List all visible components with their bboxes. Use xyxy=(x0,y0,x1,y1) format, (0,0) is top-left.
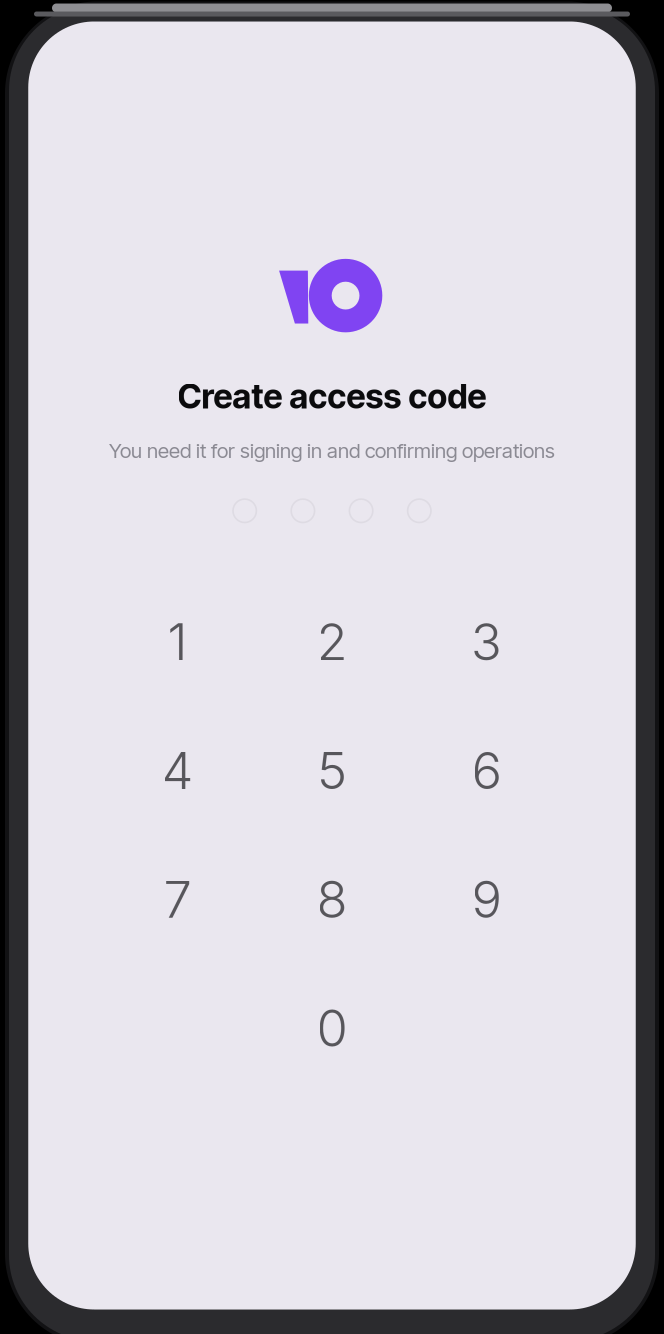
button[interactable]: 9 xyxy=(409,835,564,964)
button[interactable]: 0 xyxy=(255,964,409,1092)
button[interactable]: 3 xyxy=(409,577,564,706)
button[interactable]: 2 xyxy=(255,577,409,706)
staticText: Create access code xyxy=(177,376,486,417)
button[interactable]: 1 xyxy=(100,577,255,706)
staticText: 3 xyxy=(471,611,502,672)
button[interactable]: 8 xyxy=(255,835,409,964)
button[interactable]: 6 xyxy=(409,706,564,835)
staticText: 7 xyxy=(163,869,191,930)
staticText: You need it for signing in and confirmin… xyxy=(109,438,555,463)
button[interactable]: 5 xyxy=(255,706,409,835)
staticText: 0 xyxy=(316,997,347,1059)
staticText: 9 xyxy=(471,869,501,930)
button[interactable]: 4 xyxy=(100,706,255,835)
staticText: 5 xyxy=(317,740,347,801)
staticText: 2 xyxy=(316,611,347,672)
staticText: 8 xyxy=(316,869,347,930)
staticText: 1 xyxy=(167,611,187,672)
staticText: 6 xyxy=(471,740,501,801)
button[interactable]: 7 xyxy=(100,835,255,964)
staticText: 4 xyxy=(161,740,193,801)
